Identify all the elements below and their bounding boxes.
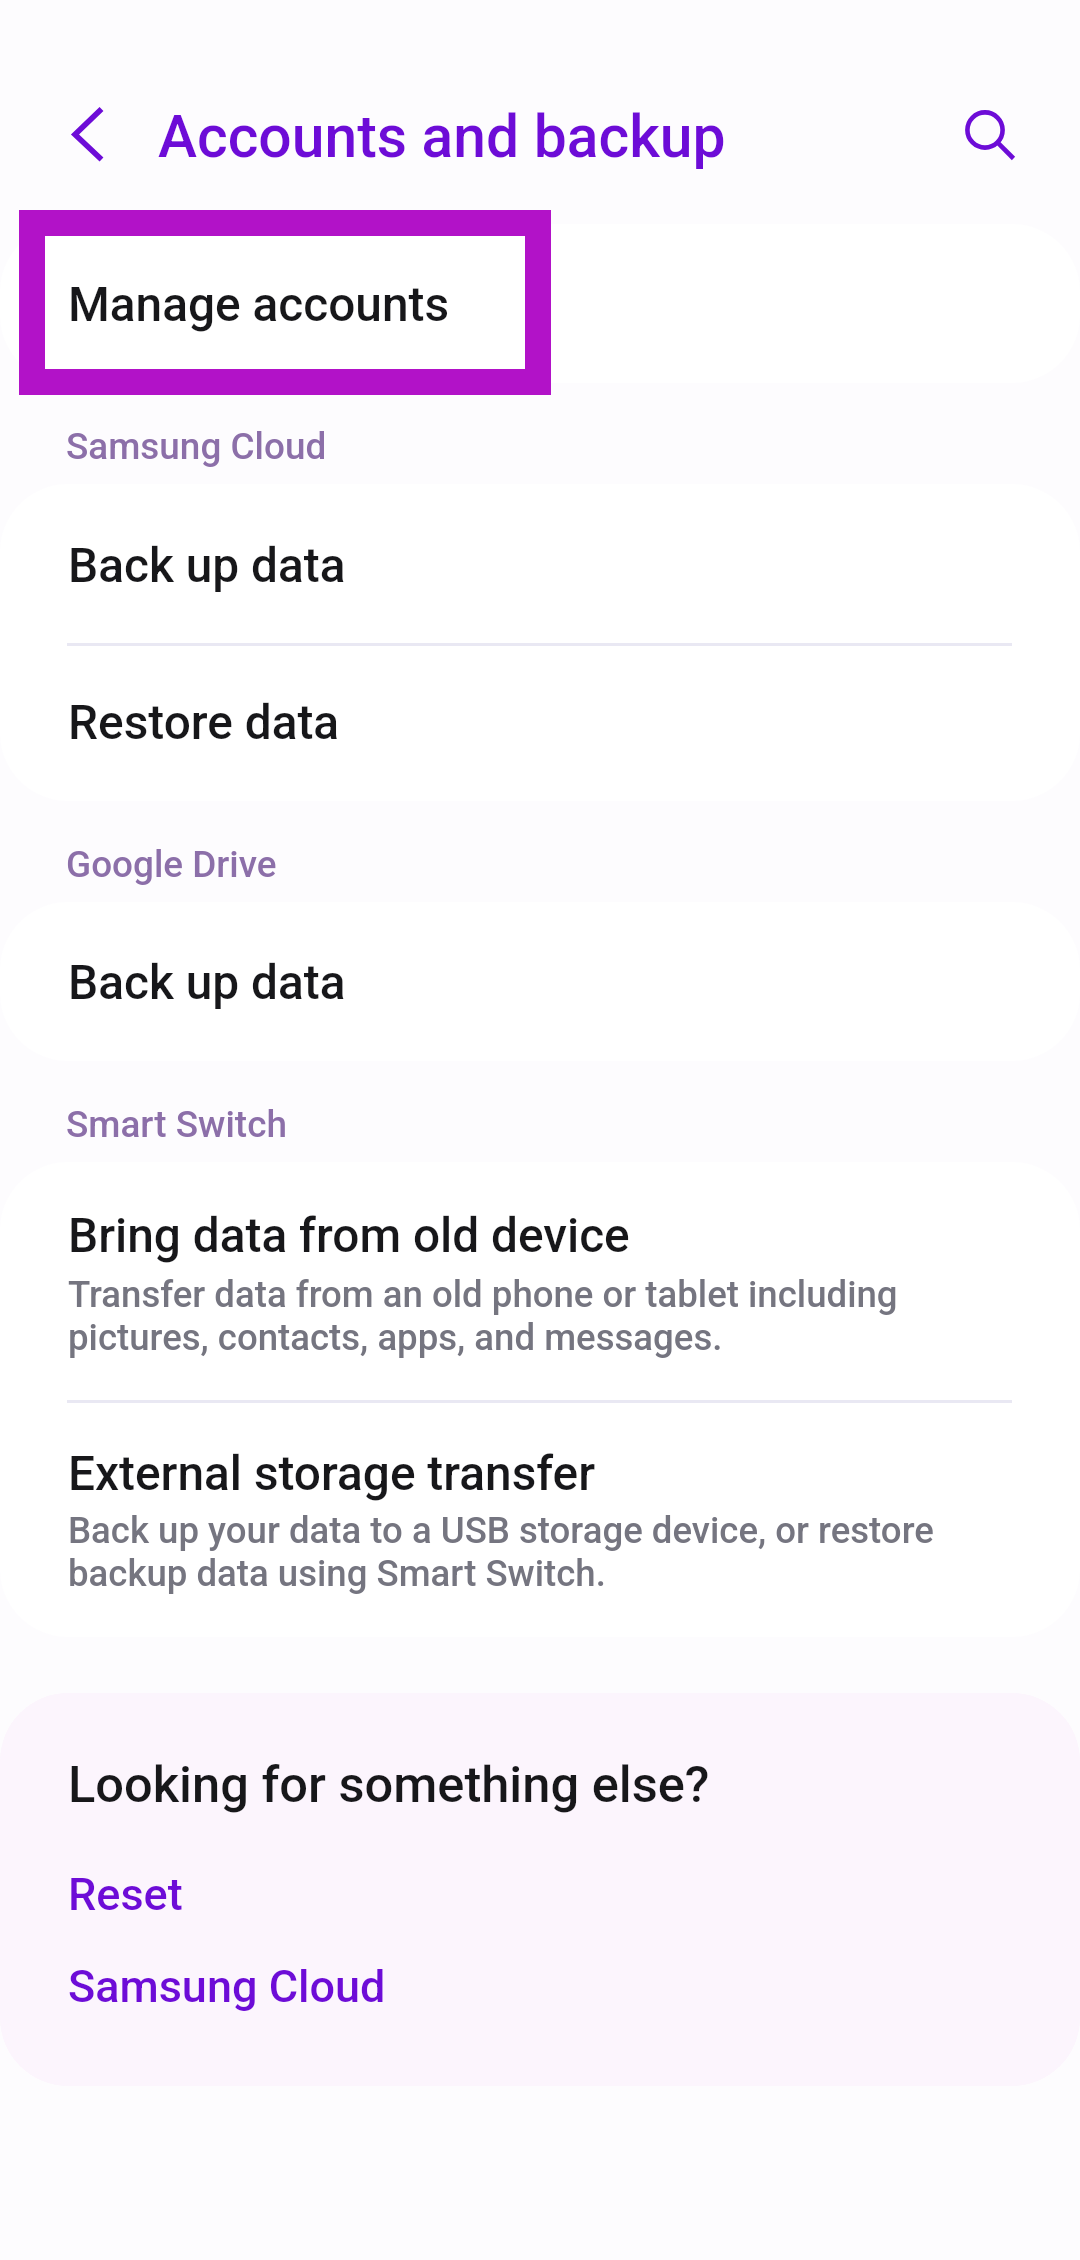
staticText: Manage accounts <box>68 277 449 333</box>
button[interactable]: Navigate up <box>32 78 144 190</box>
staticText: Samsung Cloud <box>66 425 327 468</box>
staticText: Back up data <box>68 538 346 594</box>
staticText: External storage transfer <box>68 1446 596 1502</box>
staticText: Bring data from old device <box>68 1208 630 1264</box>
button[interactable]: Manage accounts <box>0 224 1080 383</box>
staticText: Accounts and backup <box>158 102 726 171</box>
staticText: Samsung Cloud <box>68 1960 386 2013</box>
staticText: Smart Switch <box>66 1103 287 1146</box>
button[interactable]: Back up data <box>0 484 1080 643</box>
staticText: Transfer data from an old phone or table… <box>68 1273 898 1359</box>
button[interactable]: Restore data <box>0 644 1080 801</box>
button[interactable]: Search <box>929 78 1041 190</box>
staticText: Looking for something else? <box>68 1755 710 1814</box>
button[interactable]: Back up data <box>0 902 1080 1061</box>
button[interactable]: Samsung Cloud <box>55 1946 400 2026</box>
staticText: Restore data <box>68 695 340 751</box>
staticText: Reset <box>68 1868 183 1921</box>
staticText: Google Drive <box>66 843 277 886</box>
staticText: Back up data <box>68 955 346 1011</box>
staticText: Back up your data to a USB storage devic… <box>68 1509 934 1595</box>
button[interactable]: Bring data from old device <box>0 1162 1080 1401</box>
button[interactable]: Reset <box>55 1854 220 1934</box>
button[interactable]: External storage transfer <box>0 1401 1080 1637</box>
